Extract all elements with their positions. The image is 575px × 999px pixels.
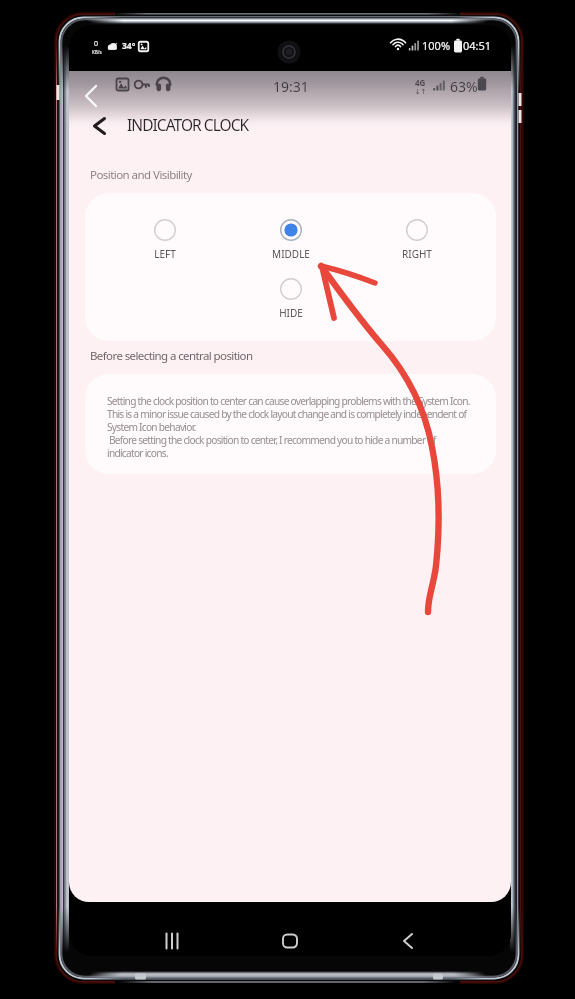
- staticText: Before selecting a central position: [90, 348, 253, 364]
- button[interactable]: Back: [77, 104, 121, 148]
- button[interactable]: Home: [266, 917, 314, 956]
- staticText: MIDDLE: [272, 247, 310, 261]
- staticText: KB/s: [92, 49, 102, 55]
- staticText: ↓↑: [415, 88, 427, 96]
- button[interactable]: RIGHT: [383, 219, 451, 264]
- button[interactable]: Recent apps: [148, 917, 196, 956]
- staticText: 34°: [122, 40, 136, 52]
- button[interactable]: HIDE: [257, 278, 325, 323]
- staticText: 0: [94, 39, 99, 49]
- staticText: HIDE: [279, 306, 303, 320]
- staticText: RIGHT: [402, 247, 432, 261]
- staticText: 4G: [415, 77, 426, 88]
- staticText: 04:51: [463, 38, 492, 53]
- staticText: 100%: [422, 38, 451, 53]
- staticText: 63%: [450, 77, 478, 96]
- staticText: Setting the clock position to center can…: [107, 394, 485, 460]
- button[interactable]: Back: [384, 917, 432, 956]
- staticText: LEFT: [154, 247, 176, 261]
- staticText: INDICATOR CLOCK: [127, 114, 249, 135]
- button[interactable]: MIDDLE: [257, 219, 325, 264]
- button[interactable]: LEFT: [131, 219, 199, 264]
- staticText: Position and Visibility: [90, 167, 192, 183]
- staticText: 19:31: [273, 77, 309, 96]
